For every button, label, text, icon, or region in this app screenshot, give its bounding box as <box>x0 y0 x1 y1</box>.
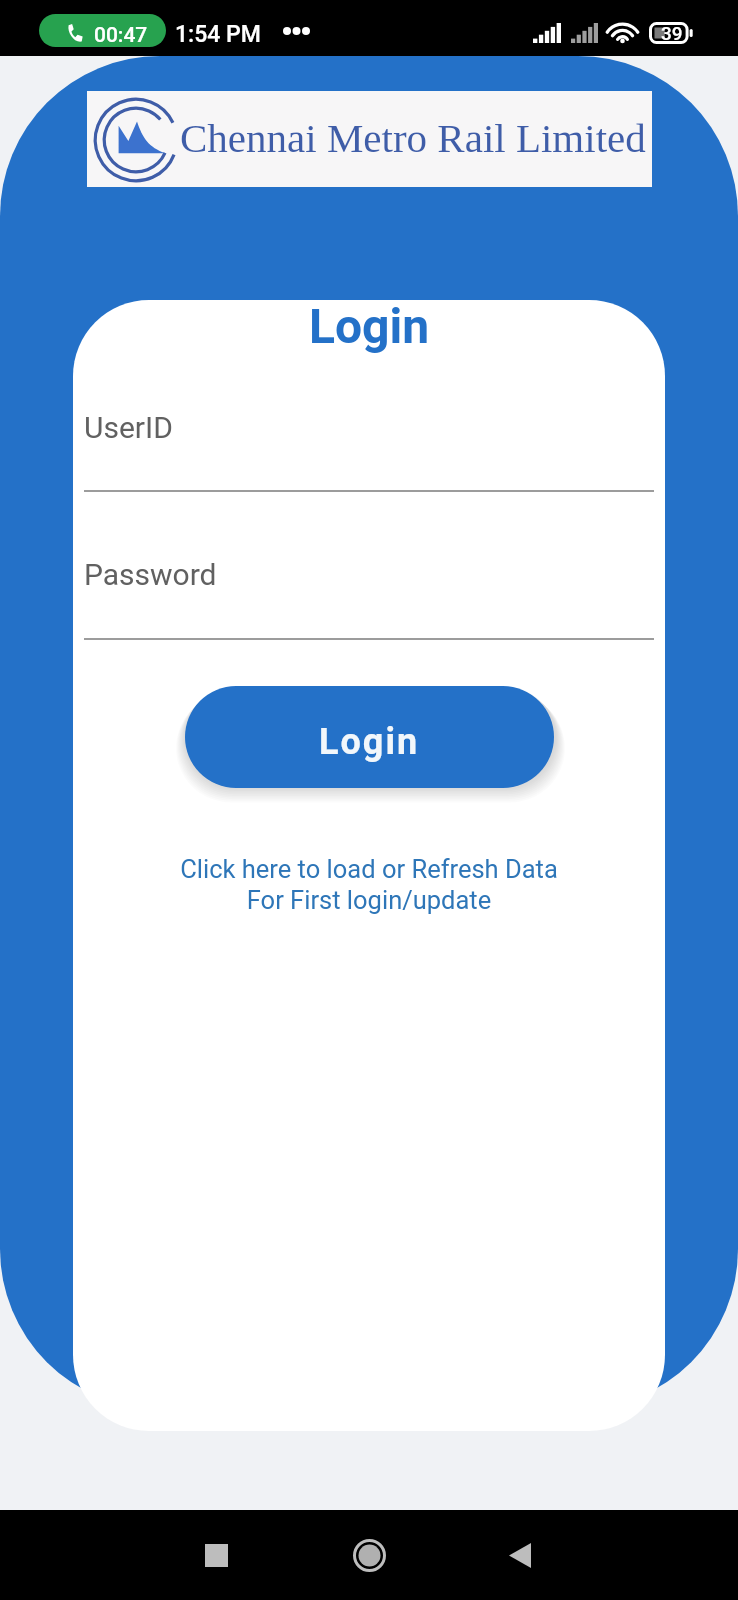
staticText: Password <box>84 557 217 592</box>
staticText: Login <box>319 721 420 763</box>
button[interactable]: Login <box>185 686 554 788</box>
staticText: 00:47 <box>94 23 148 47</box>
button[interactable]: Home <box>334 1530 404 1580</box>
button[interactable]: UserID <box>84 404 654 492</box>
button[interactable]: Password <box>84 551 654 640</box>
staticText: Login <box>73 300 665 354</box>
staticText: Click here to load or Refresh Data For F… <box>180 854 558 915</box>
staticText: UserID <box>84 410 173 445</box>
staticText: 1:54 PM <box>175 21 261 48</box>
staticText: Chennai Metro Rail Limited <box>180 115 646 160</box>
button[interactable]: Recents <box>181 1530 251 1580</box>
button[interactable]: Back <box>485 1530 555 1580</box>
staticText: 39 <box>661 22 683 44</box>
button[interactable]: Click here to load or Refresh Data For F… <box>73 854 665 915</box>
